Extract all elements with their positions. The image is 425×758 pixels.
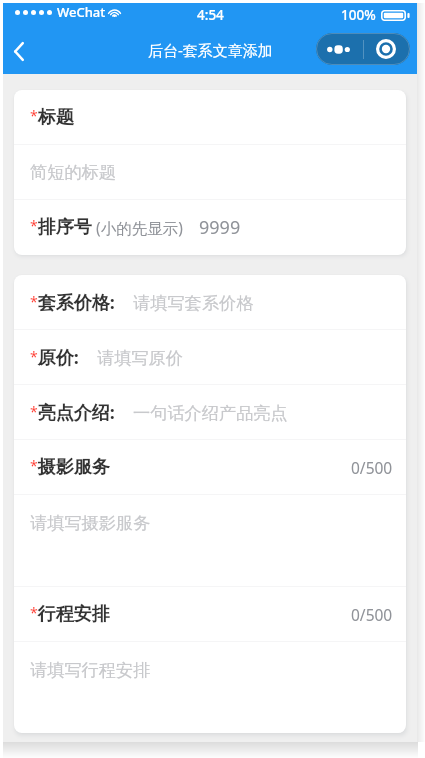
- staticText: *行程安排: [30, 603, 110, 626]
- button[interactable]: *行程安排: [30, 587, 393, 641]
- button[interactable]: 请填写行程安排: [30, 642, 390, 733]
- button[interactable]: *亮点介绍:: [30, 385, 390, 439]
- button[interactable]: Close: [364, 33, 410, 65]
- staticText: *标题: [30, 106, 74, 129]
- staticText: 后台-套系文章添加: [148, 40, 273, 60]
- button[interactable]: 简短的标题: [30, 145, 390, 199]
- staticText: 简短的标题: [30, 161, 116, 183]
- staticText: 请填写行程安排: [30, 659, 151, 681]
- staticText: 4:54: [197, 6, 224, 24]
- staticText: 100%: [341, 6, 376, 24]
- staticText: *排序号: [30, 216, 92, 239]
- staticText: 9999: [199, 215, 241, 240]
- staticText: 0/500: [351, 604, 393, 625]
- staticText: *原价:: [30, 345, 79, 370]
- staticText: *摄影服务: [30, 456, 110, 479]
- button[interactable]: *标题: [30, 90, 390, 144]
- button[interactable]: *摄影服务: [30, 440, 393, 494]
- button[interactable]: *套系价格:: [30, 275, 390, 329]
- staticText: *套系价格:: [30, 290, 115, 315]
- button[interactable]: More options: [316, 33, 363, 65]
- staticText: 请填写原价: [97, 347, 183, 369]
- button[interactable]: 请填写摄影服务: [30, 495, 390, 586]
- staticText: *亮点介绍:: [30, 400, 115, 425]
- button[interactable]: *原价:: [30, 330, 390, 384]
- button[interactable]: *排序号: [30, 200, 390, 255]
- staticText: 一句话介绍产品亮点: [133, 402, 288, 424]
- staticText: 0/500: [351, 457, 393, 478]
- staticText: WeChat: [57, 3, 106, 21]
- button[interactable]: Back: [3, 32, 39, 68]
- staticText: (小的先显示): [96, 217, 183, 238]
- staticText: 请填写摄影服务: [30, 512, 151, 534]
- staticText: 请填写套系价格: [133, 292, 254, 314]
